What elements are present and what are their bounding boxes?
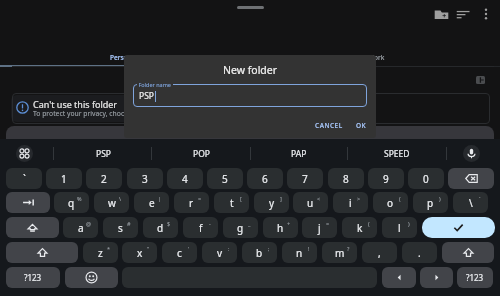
button[interactable]: Shift (6, 242, 78, 263)
staticText: 1 (61, 172, 67, 186)
button[interactable]: 6 (247, 168, 283, 189)
button[interactable]: z (83, 242, 118, 263)
staticText: \ (119, 195, 122, 202)
button[interactable]: 4 (167, 168, 203, 189)
staticText: + (287, 220, 291, 227)
staticText: | (158, 195, 162, 202)
button[interactable]: x (122, 242, 157, 263)
button[interactable]: b (242, 242, 277, 263)
button[interactable] (6, 126, 494, 150)
staticText: q (68, 196, 75, 210)
staticText: PSP (96, 148, 111, 160)
staticText: # (127, 220, 131, 227)
button[interactable]: Left (382, 267, 416, 288)
button[interactable]: Keyboard toolbar (16, 145, 33, 162)
staticText: r (189, 196, 194, 210)
staticText: New folder (223, 63, 278, 77)
button[interactable]: 0 (408, 168, 444, 189)
button[interactable]: q (54, 192, 89, 213)
button[interactable]: SPEED (365, 139, 429, 168)
button[interactable]: 2 (86, 168, 122, 189)
button[interactable]: p (413, 192, 448, 213)
button[interactable]: o (373, 192, 408, 213)
button[interactable]: y (254, 192, 289, 213)
button[interactable]: ` (6, 168, 42, 189)
staticText: o (387, 196, 394, 210)
button[interactable]: Backspace (448, 168, 494, 189)
button[interactable]: w (94, 192, 129, 213)
button[interactable]: PSP (133, 84, 367, 107)
staticText: t (230, 196, 234, 210)
staticText: - (209, 220, 211, 227)
staticText: i (349, 196, 352, 210)
staticText: SPEED (384, 148, 410, 160)
staticText: % (77, 195, 82, 202)
button[interactable]: j (302, 217, 337, 238)
button[interactable]: g (223, 217, 258, 238)
button[interactable]: n (282, 242, 317, 263)
button[interactable]: r (174, 192, 209, 213)
staticText: @ (86, 220, 91, 227)
button[interactable]: d (143, 217, 178, 238)
button[interactable]: Enter (422, 217, 495, 238)
button[interactable]: Can't use this folder (11, 95, 311, 122)
button[interactable]: f (183, 217, 218, 238)
button[interactable]: OK (351, 118, 371, 133)
staticText: u (307, 196, 314, 210)
button[interactable]: Emoji (65, 267, 118, 288)
button[interactable]: Work (352, 50, 400, 64)
button[interactable]: u (293, 192, 328, 213)
button[interactable]: m (322, 242, 357, 263)
button[interactable]: e (134, 192, 169, 213)
button[interactable]: s (103, 217, 138, 238)
button[interactable]: 1 (46, 168, 82, 189)
button[interactable]: PSP (71, 139, 135, 168)
button[interactable]: v (202, 242, 237, 263)
button[interactable]: , (362, 242, 397, 263)
staticText: < (317, 195, 321, 202)
button[interactable]: Right (420, 267, 453, 288)
button[interactable]: ?123 (6, 267, 60, 288)
button[interactable]: l (382, 217, 417, 238)
button[interactable]: \ (453, 192, 488, 213)
staticText: ` (23, 172, 26, 186)
button[interactable]: More options (479, 7, 493, 21)
button[interactable]: 5 (207, 168, 243, 189)
staticText: 2 (101, 172, 107, 186)
button[interactable]: 7 (287, 168, 323, 189)
staticText: h (277, 221, 284, 235)
button[interactable]: Personal (95, 50, 153, 64)
button[interactable]: 8 (328, 168, 364, 189)
button[interactable]: 3 (127, 168, 163, 189)
button[interactable]: h (263, 217, 298, 238)
button[interactable]: k (342, 217, 377, 238)
button[interactable]: Shift (442, 242, 494, 263)
button[interactable]: Voice input (463, 145, 480, 162)
button[interactable]: . (402, 242, 437, 263)
staticText: Folder name (137, 81, 173, 88)
button[interactable]: Tab (6, 192, 50, 213)
button[interactable]: i (333, 192, 368, 213)
button[interactable]: PAP (267, 139, 331, 168)
button[interactable]: POP (169, 139, 233, 168)
button[interactable]: Sort (456, 7, 471, 21)
button[interactable]: 9 (368, 168, 404, 189)
button[interactable]: Caps lock (6, 217, 59, 238)
staticText: PAP (291, 148, 307, 160)
button[interactable]: c (162, 242, 197, 263)
button[interactable]: View options (476, 76, 485, 84)
staticText: ) (439, 195, 441, 202)
staticText: POP (193, 148, 210, 160)
button[interactable]: a (63, 217, 98, 238)
staticText: ) (408, 220, 410, 227)
button[interactable]: Create new folder (433, 6, 450, 23)
staticText: \ (469, 196, 473, 210)
button[interactable]: ?123 (457, 267, 493, 288)
staticText: > (357, 195, 361, 202)
staticText: . (418, 246, 421, 260)
button[interactable]: t (214, 192, 249, 213)
button[interactable]: CANCEL (312, 118, 345, 133)
staticText: = (198, 195, 202, 202)
staticText: [ (240, 195, 242, 202)
